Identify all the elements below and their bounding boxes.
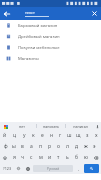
staticText: й — [3, 132, 7, 139]
staticText: Магазины — [18, 56, 39, 62]
button[interactable]: текст — [25, 10, 49, 17]
button[interactable]: с — [27, 152, 36, 163]
staticText: х — [95, 132, 98, 139]
button[interactable]: б — [72, 152, 81, 163]
staticText: е — [41, 132, 44, 139]
button[interactable]: л — [63, 141, 72, 152]
staticText: щ — [76, 132, 81, 139]
button[interactable]: Clear — [88, 7, 101, 20]
button[interactable]: Back — [0, 7, 13, 20]
staticText: ц — [13, 132, 17, 139]
button[interactable]: й — [0, 130, 10, 141]
button[interactable]: к — [29, 130, 38, 141]
staticText: р — [48, 143, 52, 150]
button[interactable]: щ — [74, 130, 83, 141]
staticText: ю — [84, 154, 88, 161]
button[interactable]: ш — [65, 130, 74, 141]
button[interactable]: о — [54, 141, 63, 152]
button[interactable]: е — [38, 130, 47, 141]
button[interactable]: я — [10, 152, 18, 163]
staticText: л — [66, 143, 69, 150]
button[interactable]: и — [45, 152, 54, 163]
button[interactable]: т — [54, 152, 63, 163]
staticText: т — [57, 154, 60, 161]
button[interactable]: ф — [2, 141, 10, 152]
button[interactable]: написать — [37, 122, 65, 130]
button[interactable]: Покупки мебельные — [0, 42, 101, 53]
staticText: Бармовый магазин — [18, 23, 58, 29]
staticText: с — [30, 154, 33, 161]
staticText: з — [86, 132, 89, 139]
button[interactable]: п — [36, 141, 45, 152]
staticText: н — [50, 132, 54, 139]
staticText: написал — [73, 124, 88, 129]
staticText: б — [75, 154, 78, 161]
staticText: к — [32, 132, 35, 139]
staticText: г — [59, 132, 62, 139]
staticText: э — [93, 143, 96, 150]
button[interactable]: Google — [3, 124, 8, 129]
staticText: ш — [67, 132, 72, 139]
staticText: ж — [84, 143, 88, 150]
button[interactable]: д — [72, 141, 81, 152]
staticText: м — [39, 154, 43, 161]
button[interactable]: написал — [66, 122, 94, 130]
button[interactable]: г — [56, 130, 65, 141]
button[interactable]: ь — [63, 152, 72, 163]
staticText: ч — [21, 154, 24, 161]
staticText: и — [48, 154, 52, 161]
button[interactable]: н — [47, 130, 56, 141]
button[interactable]: ю — [81, 152, 90, 163]
button[interactable]: Emoji — [14, 163, 23, 174]
staticText: у — [23, 132, 26, 139]
staticText: нет — [19, 124, 25, 129]
button[interactable]: Change language — [23, 163, 32, 174]
staticText: а — [30, 143, 33, 150]
staticText: п — [39, 143, 43, 150]
staticText: Покупки мебельные — [18, 45, 60, 51]
staticText: ф — [4, 143, 8, 150]
button[interactable]: х — [92, 130, 101, 141]
staticText: Русский — [47, 167, 60, 171]
button[interactable]: э — [90, 141, 99, 152]
staticText: Дрейбовый магазин — [18, 34, 60, 40]
staticText: д — [75, 143, 79, 150]
button[interactable]: ч — [18, 152, 27, 163]
staticText: текст — [25, 10, 35, 15]
button[interactable]: Search — [84, 164, 99, 173]
button[interactable]: ?123 — [1, 163, 14, 174]
staticText: ь — [66, 154, 69, 161]
staticText: написать — [43, 124, 59, 129]
staticText: в — [21, 143, 24, 150]
button[interactable]: Shift — [0, 152, 10, 163]
button[interactable]: Бармовый магазин — [0, 20, 101, 31]
button[interactable]: Русский — [33, 165, 73, 172]
staticText: . — [78, 166, 80, 172]
button[interactable]: м — [36, 152, 45, 163]
button[interactable]: Магазины — [0, 53, 101, 64]
button[interactable]: . — [74, 163, 83, 174]
button[interactable]: в — [18, 141, 27, 152]
staticText: ы — [12, 143, 16, 150]
button[interactable]: ж — [81, 141, 90, 152]
button[interactable]: Backspace — [90, 152, 101, 163]
button[interactable]: а — [27, 141, 36, 152]
button[interactable]: ы — [10, 141, 18, 152]
button[interactable]: з — [83, 130, 92, 141]
staticText: я — [13, 154, 16, 161]
button[interactable]: Voice input — [94, 123, 100, 129]
button[interactable]: р — [45, 141, 54, 152]
button[interactable]: Дрейбовый магазин — [0, 31, 101, 42]
button[interactable]: ц — [10, 130, 20, 141]
staticText: о — [57, 143, 60, 150]
button[interactable]: у — [20, 130, 29, 141]
staticText: ?123 — [3, 166, 12, 171]
button[interactable]: нет — [8, 122, 36, 130]
